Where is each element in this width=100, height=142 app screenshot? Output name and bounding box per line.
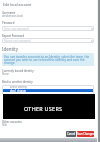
- staticText: None: [2, 72, 9, 76]
- staticText: alex1 change: [10, 89, 27, 92]
- staticText: Identity: [2, 46, 18, 52]
- staticText: Bind to another identity: [2, 80, 33, 84]
- staticText: OTHER USERS: [24, 105, 63, 112]
- staticText: Currently bound identity: [2, 69, 34, 73]
- staticText: You can transfer accounts to an Identity…: [4, 55, 92, 65]
- button[interactable]: Enter new password: [2, 26, 94, 31]
- button[interactable]: alex1 change: [2, 89, 94, 92]
- staticText: Enter new password: [4, 27, 29, 31]
- staticText: Username: [2, 11, 16, 15]
- staticText: Cancel: [67, 132, 76, 136]
- staticText: N/A: [2, 123, 7, 127]
- staticText: Other accounts: [2, 120, 22, 124]
- staticText: Repeat new password: [4, 39, 31, 43]
- staticText: Edit local account: [3, 2, 32, 7]
- button[interactable]: Save Changes: [77, 131, 94, 137]
- button[interactable]: Cancel: [66, 131, 76, 137]
- staticText: another: [10, 92, 19, 95]
- button[interactable]: Repeat new password: [2, 38, 94, 43]
- staticText: Password: [2, 21, 15, 25]
- button[interactable]: select identity: [2, 85, 94, 89]
- button[interactable]: another: [2, 92, 94, 95]
- staticText: Repeat Password: [2, 34, 25, 38]
- staticText: select identity: [10, 85, 27, 89]
- staticText: Save Changes: [77, 132, 94, 136]
- staticText: alexbenson.local: [2, 14, 24, 18]
